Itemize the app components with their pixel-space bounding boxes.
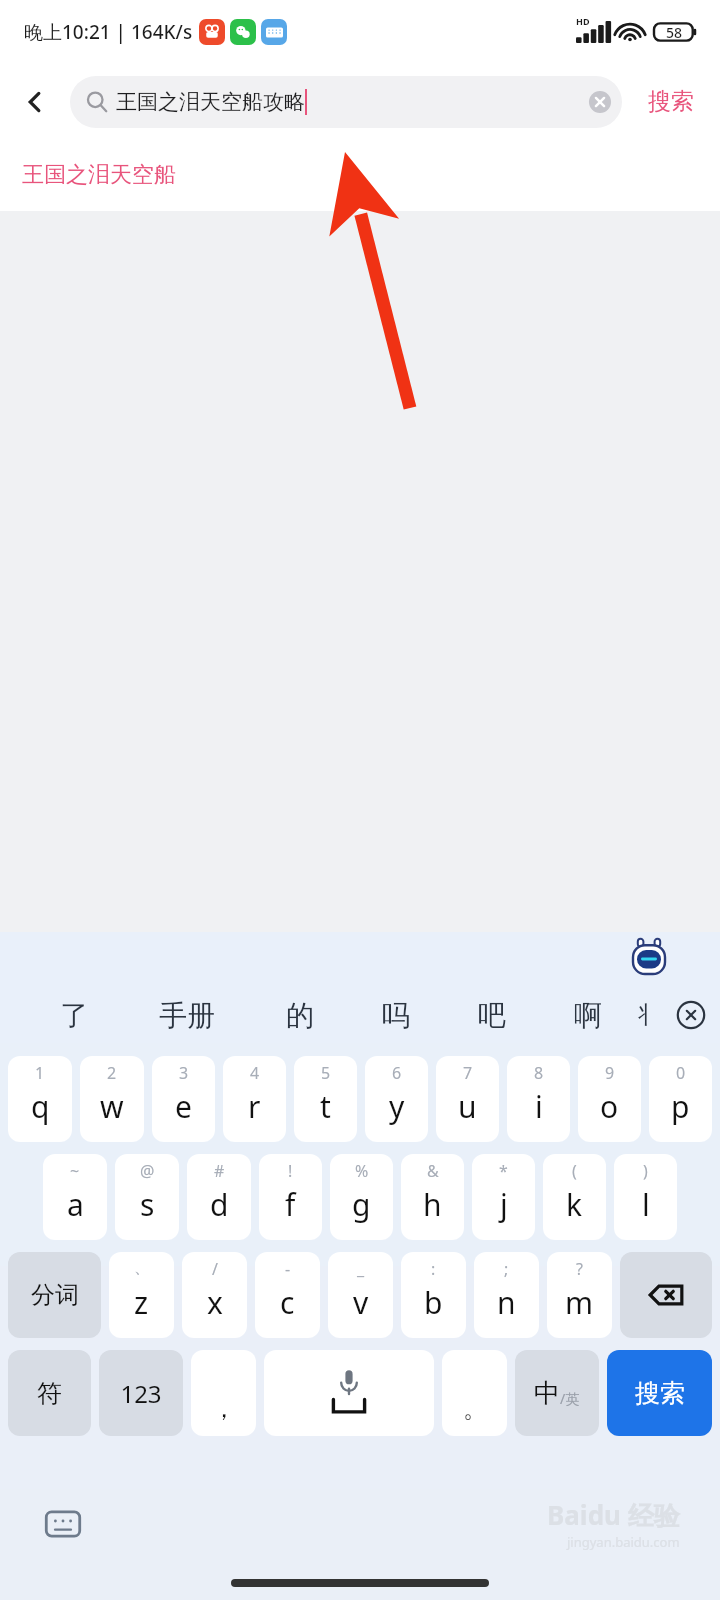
button[interactable]: 0	[649, 1056, 712, 1142]
button[interactable]: ~	[43, 1154, 107, 1240]
button[interactable]: &	[401, 1154, 464, 1240]
button[interactable]: 王国之泪天空船	[0, 139, 720, 211]
button[interactable]: 3	[152, 1056, 215, 1142]
staticText: 5	[321, 1062, 331, 1084]
button[interactable]: 吗	[348, 984, 444, 1046]
button[interactable]: 9	[578, 1056, 641, 1142]
staticText: 吧	[478, 998, 506, 1033]
button[interactable]: #	[187, 1154, 251, 1240]
staticText: HD	[576, 15, 590, 27]
button[interactable]: ?	[547, 1252, 612, 1338]
staticText: 9	[605, 1062, 615, 1084]
staticText: ?	[576, 1258, 583, 1280]
button[interactable]: /	[182, 1252, 247, 1338]
staticText: 中	[534, 1377, 560, 1410]
button[interactable]: 符	[8, 1350, 91, 1436]
button[interactable]: 搜索	[622, 64, 720, 139]
staticText: g	[352, 1184, 371, 1225]
button[interactable]: Switch keyboard	[40, 1501, 86, 1547]
button[interactable]: 啊	[540, 984, 636, 1046]
button[interactable]: 1	[8, 1056, 72, 1142]
staticText: %	[355, 1160, 369, 1182]
staticText: u	[458, 1086, 477, 1127]
button[interactable]: 。	[442, 1350, 507, 1436]
button[interactable]: 7	[436, 1056, 499, 1142]
staticText: 王国之泪天空船	[22, 161, 176, 189]
staticText: w	[100, 1086, 124, 1127]
staticText: :	[431, 1258, 436, 1280]
button[interactable]: Back	[0, 64, 70, 139]
button[interactable]: _	[328, 1252, 393, 1338]
staticText: e	[175, 1086, 192, 1127]
button[interactable]: :	[401, 1252, 466, 1338]
button[interactable]: 8	[507, 1056, 570, 1142]
button[interactable]: Backspace	[620, 1252, 712, 1338]
button[interactable]: 4	[223, 1056, 286, 1142]
staticText: z	[134, 1282, 149, 1323]
staticText: 了	[60, 998, 88, 1033]
button[interactable]: 搜索	[607, 1350, 712, 1436]
button[interactable]: 、	[109, 1252, 174, 1338]
staticText: d	[210, 1184, 229, 1225]
staticText: 。	[463, 1394, 487, 1424]
button[interactable]: 2	[80, 1056, 144, 1142]
staticText: !	[288, 1160, 293, 1182]
staticText: 吗	[382, 998, 410, 1033]
button[interactable]: 吧	[444, 984, 540, 1046]
button[interactable]: 的	[252, 984, 348, 1046]
staticText: ，	[212, 1394, 236, 1424]
button[interactable]: ，	[191, 1350, 256, 1436]
button[interactable]: -	[255, 1252, 320, 1338]
button[interactable]: )	[614, 1154, 677, 1240]
staticText: 手册	[159, 998, 215, 1033]
staticText: )	[643, 1160, 648, 1182]
staticText: @	[140, 1160, 155, 1182]
button[interactable]: @	[115, 1154, 179, 1240]
staticText: p	[671, 1086, 690, 1127]
staticText: jingyan.baidu.com	[567, 1533, 680, 1551]
staticText: 6	[392, 1062, 402, 1084]
button[interactable]: !	[259, 1154, 322, 1240]
staticText: 啊	[574, 998, 602, 1033]
staticText: #	[214, 1160, 225, 1182]
staticText: 3	[179, 1062, 189, 1084]
staticText: a	[67, 1184, 84, 1225]
button[interactable]: 了	[26, 984, 122, 1046]
button[interactable]: 分词	[8, 1252, 101, 1338]
staticText: 58	[666, 23, 683, 42]
staticText: 7	[463, 1062, 473, 1084]
staticText: k	[566, 1184, 583, 1225]
button[interactable]: 王国之泪天空船攻略	[70, 76, 622, 128]
staticText: b	[424, 1282, 443, 1323]
staticText: f	[285, 1184, 296, 1225]
button[interactable]: Close candidates	[662, 984, 720, 1046]
staticText: o	[600, 1086, 619, 1127]
button[interactable]: Assistant	[626, 935, 672, 981]
button[interactable]: (	[543, 1154, 606, 1240]
staticText: (	[572, 1160, 577, 1182]
staticText: 搜索	[648, 87, 694, 116]
button[interactable]: 手册	[122, 984, 252, 1046]
button[interactable]: *	[472, 1154, 535, 1240]
staticText: /英	[560, 1389, 580, 1408]
button[interactable]: %	[330, 1154, 393, 1240]
staticText: s	[140, 1184, 155, 1225]
button[interactable]: 123	[99, 1350, 183, 1436]
staticText: Baidu 经验	[547, 1497, 680, 1533]
staticText: /	[212, 1258, 218, 1280]
staticText: 分词	[31, 1280, 79, 1310]
staticText: l	[642, 1184, 650, 1225]
staticText: y	[389, 1086, 405, 1127]
button[interactable]: 5	[294, 1056, 357, 1142]
staticText: v	[353, 1282, 369, 1323]
staticText: 1	[35, 1062, 45, 1084]
button[interactable]: 6	[365, 1056, 428, 1142]
button[interactable]: ;	[474, 1252, 539, 1338]
button[interactable]: 中	[515, 1350, 599, 1436]
staticText: 晚上10:21 | 164K/s	[24, 19, 193, 45]
button[interactable]: Clear	[578, 80, 622, 124]
button[interactable]: Space	[264, 1350, 434, 1436]
staticText: j	[500, 1184, 508, 1225]
staticText: -	[285, 1258, 291, 1280]
staticText: m	[565, 1282, 594, 1323]
